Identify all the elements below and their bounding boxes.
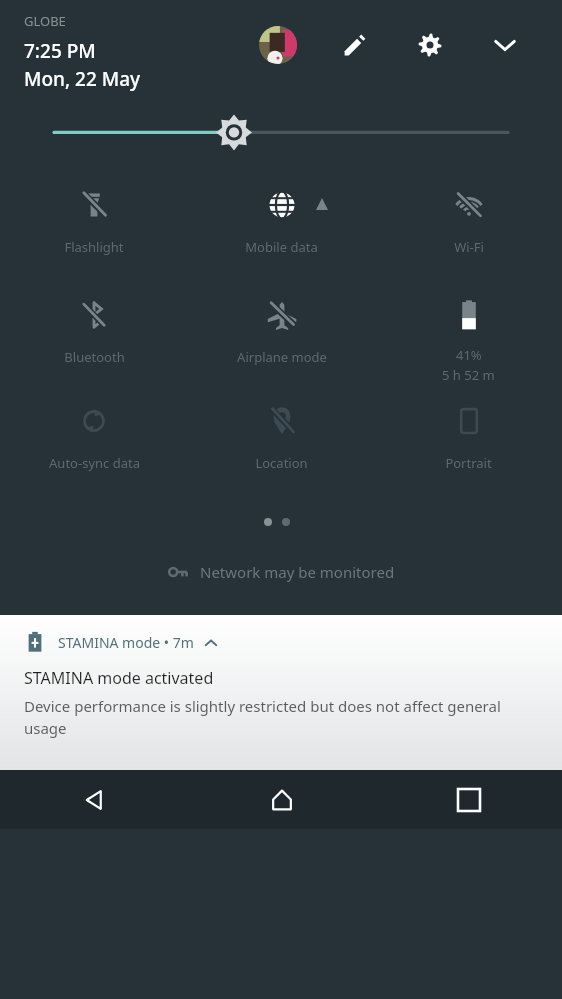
staticText: Network may be monitored	[200, 562, 395, 582]
staticText: Bluetooth	[64, 348, 125, 366]
staticText: Auto-sync data	[49, 454, 140, 472]
button[interactable]: Home	[188, 770, 375, 829]
button[interactable]: User profile	[259, 26, 297, 64]
button[interactable]: Network may be monitored	[0, 547, 562, 597]
staticText: Flashlight	[64, 238, 124, 256]
button[interactable]: Settings	[409, 24, 451, 66]
button[interactable]: Auto-sync data	[0, 392, 188, 472]
staticText: GLOBE	[24, 12, 66, 30]
button[interactable]: Wi-Fi	[375, 172, 562, 256]
staticText: Location	[255, 454, 308, 472]
button[interactable]: Portrait	[375, 392, 562, 472]
staticText: Mobile data	[245, 238, 318, 256]
staticText: Wi-Fi	[454, 238, 484, 256]
button[interactable]: Brightness	[0, 100, 562, 172]
button[interactable]: Airplane mode	[188, 282, 375, 366]
staticText: 41%	[456, 346, 482, 364]
button[interactable]: Bluetooth	[0, 282, 188, 366]
button[interactable]: Mobile data	[188, 172, 375, 282]
button[interactable]: Location	[188, 392, 375, 472]
button[interactable]: Back	[0, 770, 188, 829]
button[interactable]: STAMINA mode • 7m	[0, 615, 562, 770]
button[interactable]: Edit	[334, 24, 376, 66]
staticText: Device performance is slightly restricte…	[24, 696, 542, 739]
button[interactable]: 41%	[375, 282, 562, 392]
staticText: STAMINA mode activated	[24, 667, 214, 689]
staticText: Mon, 22 May	[24, 66, 141, 92]
staticText: Airplane mode	[237, 348, 327, 366]
staticText: 5 h 52 m	[442, 366, 495, 384]
button[interactable]: Collapse	[484, 24, 526, 66]
staticText: STAMINA mode • 7m	[58, 633, 194, 652]
staticText: 7:25 PM	[24, 38, 96, 64]
button[interactable]: Flashlight	[0, 172, 188, 256]
button[interactable]: Recents	[375, 770, 562, 829]
staticText: Portrait	[445, 454, 492, 472]
